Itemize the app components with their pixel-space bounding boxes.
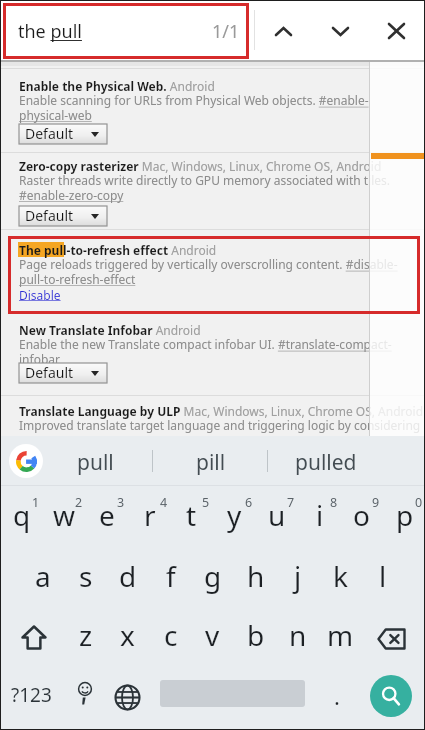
staticText: z (79, 616, 93, 654)
button[interactable]: n (276, 604, 319, 663)
button[interactable]: Default (19, 363, 107, 383)
staticText: o (353, 496, 370, 534)
button[interactable]: w (43, 486, 86, 542)
staticText: Zero-copy rasterizer Mac, Windows, Linux… (19, 158, 391, 204)
button[interactable]: Zero-copy rasterizer Mac, Windows, Linux… (0, 158, 425, 204)
staticText: g (204, 557, 222, 595)
button[interactable]: Close find in page (373, 0, 419, 62)
button[interactable]: Search (359, 660, 425, 730)
button[interactable]: Default (19, 206, 107, 226)
button[interactable]: Translate Language by ULP Mac, Windows, … (0, 403, 425, 434)
staticText: l (379, 557, 387, 595)
button[interactable]: Shift (0, 604, 66, 663)
button[interactable]: c (149, 604, 192, 663)
staticText: v (205, 616, 220, 654)
button[interactable]: i (298, 486, 341, 542)
staticText: 1 (32, 494, 40, 511)
staticText: pill (196, 448, 226, 477)
staticText: 8 (330, 494, 338, 511)
staticText: f (166, 557, 176, 595)
button[interactable]: z (64, 604, 107, 663)
staticText: 6 (245, 494, 253, 511)
staticText: h (247, 557, 265, 595)
staticText: a (35, 557, 51, 595)
button[interactable]: j (276, 545, 319, 604)
button[interactable]: Google search (9, 436, 43, 486)
staticText: c (164, 616, 178, 654)
staticText: ?123 (11, 682, 52, 708)
button[interactable]: v (191, 604, 234, 663)
button[interactable]: e (85, 486, 128, 542)
staticText: pulled (295, 448, 357, 477)
staticText: s (79, 557, 93, 595)
button[interactable]: h (234, 545, 277, 604)
staticText: j (294, 557, 302, 595)
staticText: 4 (160, 494, 168, 511)
button[interactable]: . (317, 660, 359, 730)
button[interactable]: pull (38, 436, 153, 486)
button[interactable]: ?123 (0, 660, 64, 730)
staticText: m (327, 616, 354, 654)
staticText: 3 (117, 494, 125, 511)
button[interactable]: t (170, 486, 213, 542)
staticText: u (268, 496, 286, 534)
button[interactable]: x (106, 604, 149, 663)
staticText: r (144, 496, 156, 534)
button[interactable]: Change keyboard language (106, 660, 148, 730)
button[interactable]: Emoji (64, 660, 106, 730)
button[interactable]: Space (148, 660, 317, 730)
button[interactable]: d (106, 545, 149, 604)
staticText: d (119, 557, 137, 595)
staticText: The pull-to-refresh effect Android Page … (19, 242, 398, 288)
button[interactable]: Next match (317, 0, 363, 62)
button[interactable]: Default (19, 124, 107, 144)
button[interactable]: Enable the Physical Web. Android Enable … (0, 78, 425, 124)
staticText: the pull (18, 19, 82, 44)
staticText: Default (25, 124, 91, 143)
staticText: pull (77, 448, 114, 477)
button[interactable]: q (0, 486, 43, 542)
staticText: Default (25, 363, 91, 382)
button[interactable]: y (213, 486, 256, 542)
staticText: New Translate Infobar Android Enable the… (19, 322, 392, 368)
button[interactable]: pill (153, 436, 268, 486)
button[interactable]: g (191, 545, 234, 604)
staticText: Default (25, 206, 91, 225)
staticText: 2 (75, 494, 83, 511)
staticText: i (316, 496, 324, 534)
staticText: q (13, 496, 31, 534)
staticText: w (53, 496, 76, 534)
button[interactable]: k (319, 545, 362, 604)
button[interactable]: m (319, 604, 362, 663)
button[interactable]: pulled (268, 436, 383, 486)
staticText: 0 (415, 494, 423, 511)
button[interactable]: u (255, 486, 298, 542)
staticText: n (289, 616, 307, 654)
staticText: Enable the Physical Web. Android Enable … (19, 78, 369, 124)
button[interactable]: Backspace (359, 604, 425, 663)
button[interactable]: the pull (6, 6, 244, 53)
button[interactable]: r (128, 486, 171, 542)
staticText: 9 (372, 494, 380, 511)
button[interactable]: b (234, 604, 277, 663)
button[interactable]: o (340, 486, 383, 542)
button[interactable]: p (383, 486, 425, 542)
button[interactable]: s (64, 545, 107, 604)
staticText: p (396, 496, 414, 534)
staticText: 7 (287, 494, 295, 511)
staticText: Translate Language by ULP Mac, Windows, … (19, 403, 424, 434)
staticText: y (227, 496, 242, 534)
staticText: x (120, 616, 135, 654)
button[interactable]: The pull-to-refresh effect Android Page … (0, 242, 425, 288)
staticText: k (333, 557, 348, 595)
button[interactable]: Previous match (260, 0, 306, 62)
staticText: b (247, 616, 265, 654)
staticText: . (334, 681, 340, 711)
staticText: t (186, 496, 197, 534)
button[interactable]: a (21, 545, 64, 604)
staticText: 5 (202, 494, 210, 511)
button[interactable]: New Translate Infobar Android Enable the… (0, 322, 425, 368)
button[interactable]: l (361, 545, 404, 604)
staticText: Disable (19, 287, 61, 303)
button[interactable]: f (149, 545, 192, 604)
